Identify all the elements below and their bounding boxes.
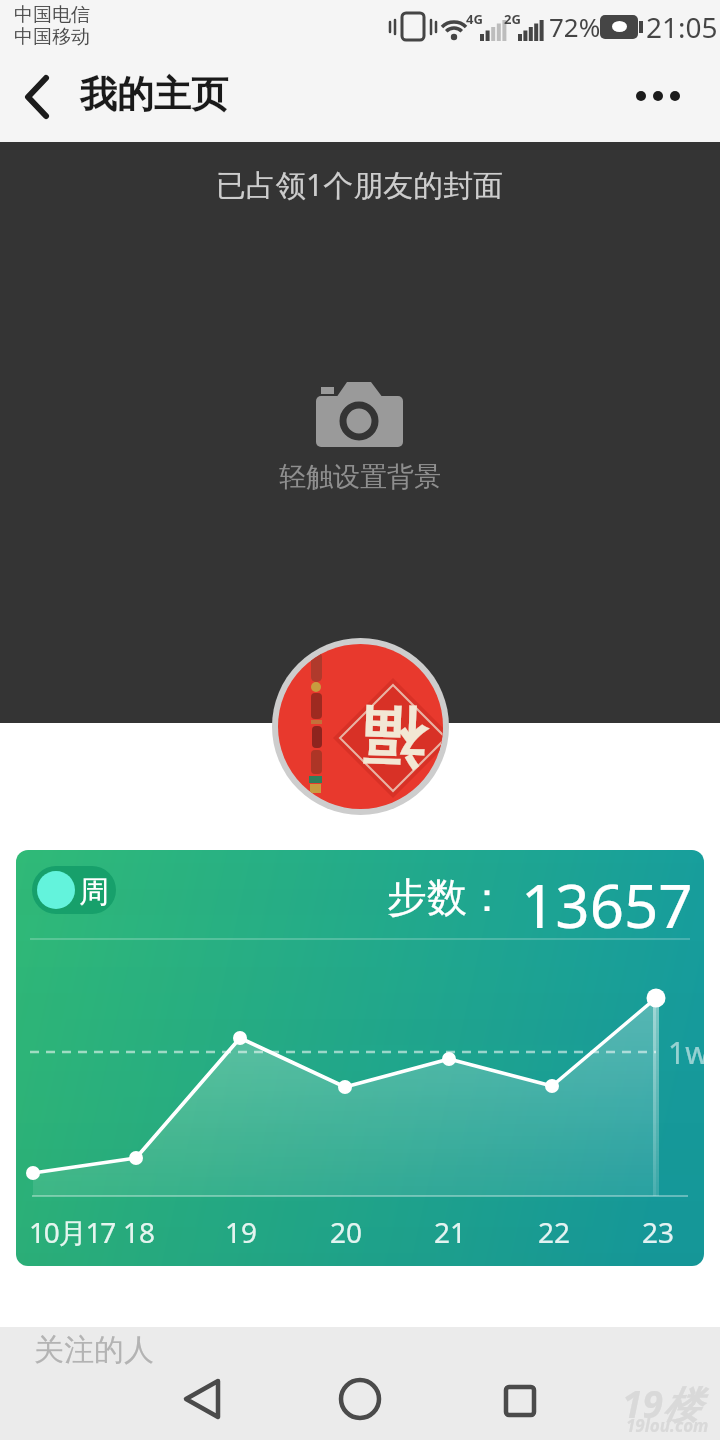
staticText: 步数： xyxy=(387,872,507,922)
staticText: 1w xyxy=(668,1032,704,1073)
staticText: 21:05 xyxy=(646,8,718,46)
staticText: 72% xyxy=(549,9,601,44)
staticText: 20 xyxy=(330,1213,363,1251)
button[interactable]: 已占领1个朋友的封面 xyxy=(0,142,720,723)
button[interactable]: 周 xyxy=(16,850,704,1266)
staticText: 我的主页 xyxy=(80,71,228,118)
button[interactable] xyxy=(8,72,60,124)
staticText: 关注的人 xyxy=(34,1331,154,1369)
button[interactable] xyxy=(626,76,696,116)
staticText: 已占领1个朋友的封面 xyxy=(216,164,504,205)
staticText: 22 xyxy=(538,1213,571,1251)
staticText: 19lou.com xyxy=(626,1414,709,1437)
staticText: 19楼 xyxy=(622,1378,700,1429)
staticText: 中国移动 xyxy=(14,25,90,49)
staticText: 21 xyxy=(434,1213,467,1251)
staticText: 10月17 xyxy=(29,1213,116,1251)
button[interactable]: 福 xyxy=(272,638,449,815)
button[interactable] xyxy=(482,1361,558,1437)
staticText: 周 xyxy=(79,873,109,911)
staticText: 2G xyxy=(504,10,521,28)
button[interactable] xyxy=(162,1361,238,1437)
staticText: 13657 xyxy=(521,864,693,946)
button[interactable] xyxy=(322,1361,398,1437)
staticText: 19 xyxy=(225,1213,258,1251)
staticText: 福 xyxy=(360,696,426,779)
button[interactable]: 周 xyxy=(32,866,116,914)
staticText: 4G xyxy=(466,10,483,28)
staticText: 23 xyxy=(642,1213,675,1251)
staticText: 18 xyxy=(123,1213,156,1251)
staticText: 轻触设置背景 xyxy=(279,460,441,494)
staticText: 中国电信 xyxy=(14,3,90,27)
